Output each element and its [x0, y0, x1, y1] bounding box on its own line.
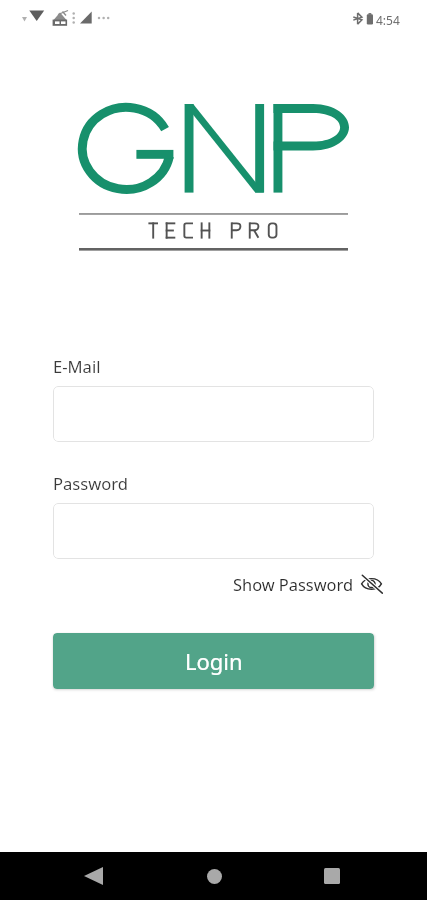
staticText: 4:54	[376, 12, 400, 28]
button[interactable]: Home	[190, 852, 238, 900]
button[interactable]: Login	[53, 633, 374, 689]
staticText: E-Mail	[53, 355, 101, 378]
button[interactable]: Show Password	[233, 572, 383, 595]
button[interactable]: Recent apps	[308, 852, 356, 900]
button[interactable]: Back	[69, 852, 117, 900]
staticText: Show Password	[233, 573, 353, 595]
button[interactable]	[53, 386, 374, 442]
staticText: Password	[53, 472, 129, 495]
staticText: Login	[185, 646, 243, 676]
button[interactable]	[53, 503, 374, 559]
other: Show password	[360, 572, 383, 595]
